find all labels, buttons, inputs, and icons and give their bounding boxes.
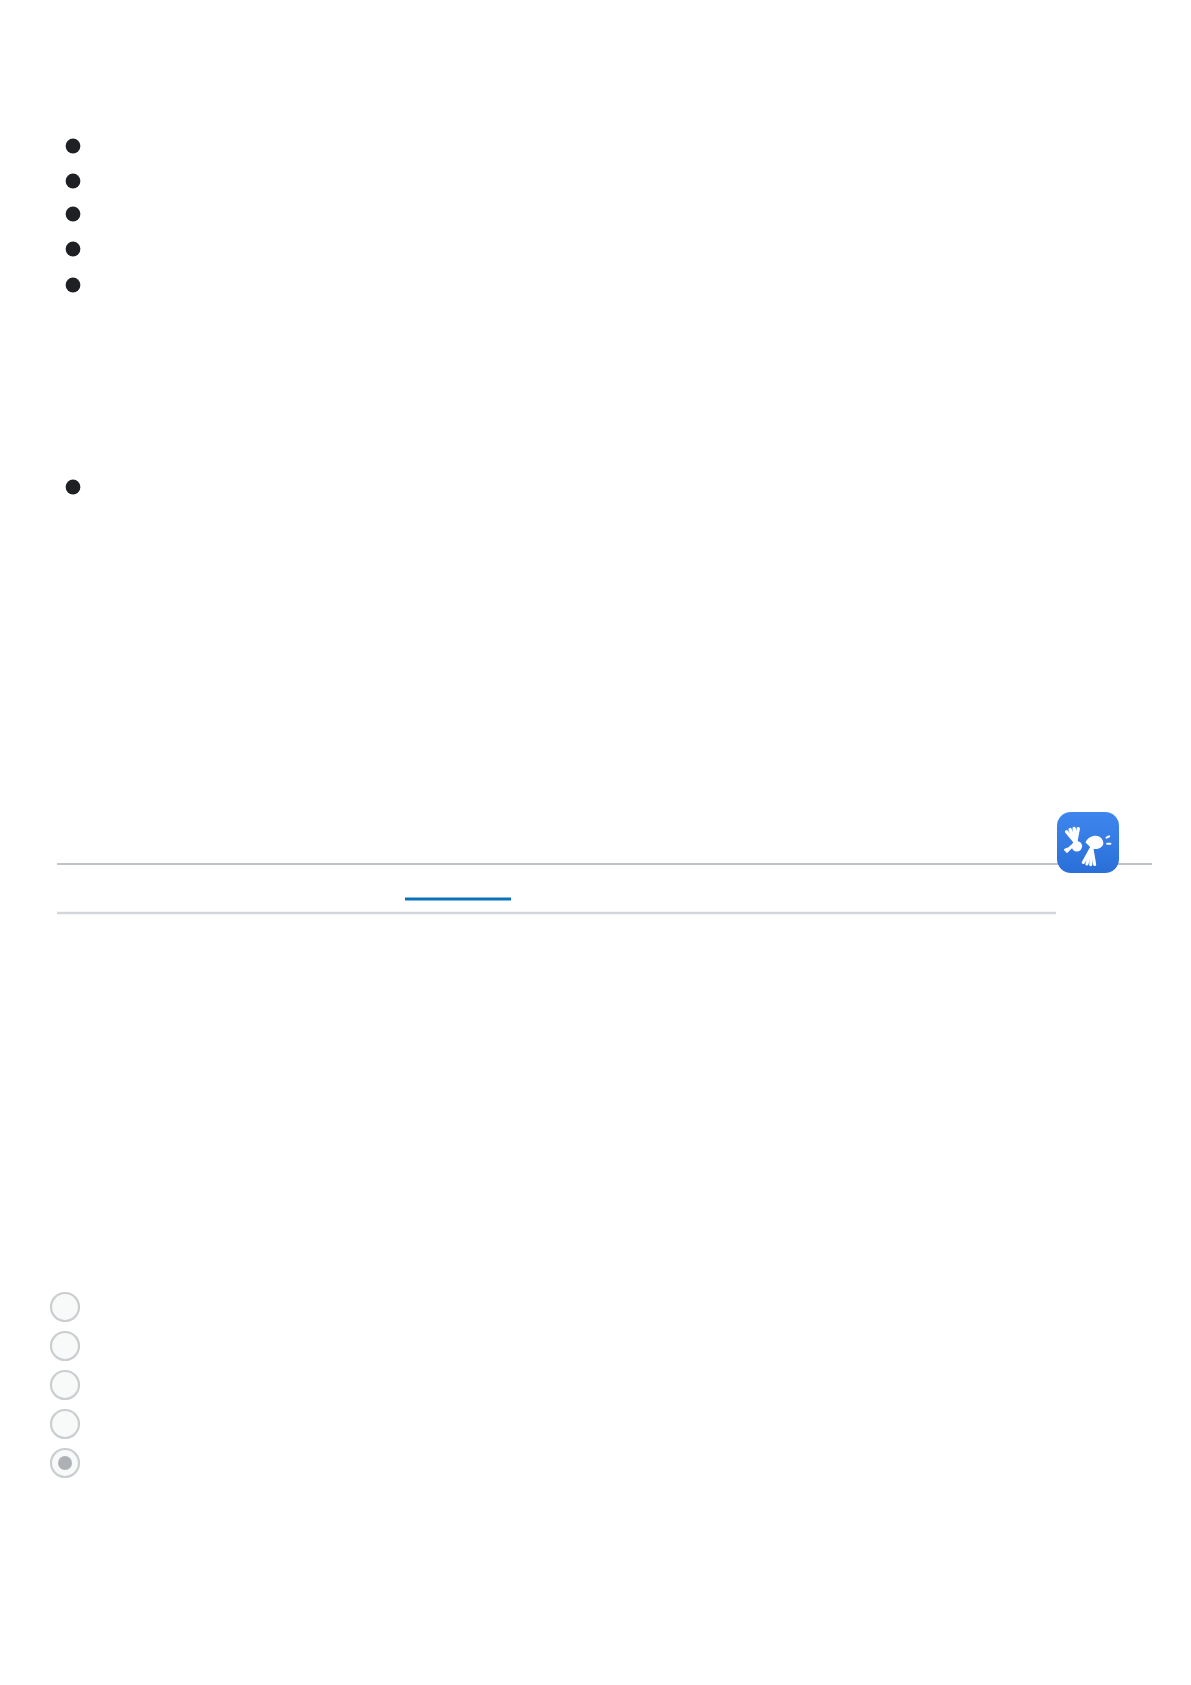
button[interactable]: Option 1 — [49, 1291, 81, 1323]
button[interactable]: Option 2 — [49, 1330, 81, 1362]
button[interactable]: Option 4 — [49, 1408, 81, 1440]
button[interactable]: Option 3 — [49, 1369, 81, 1401]
button[interactable]: Option 5 — [49, 1447, 81, 1479]
button[interactable]: Sign language interpreter — [1057, 812, 1119, 873]
